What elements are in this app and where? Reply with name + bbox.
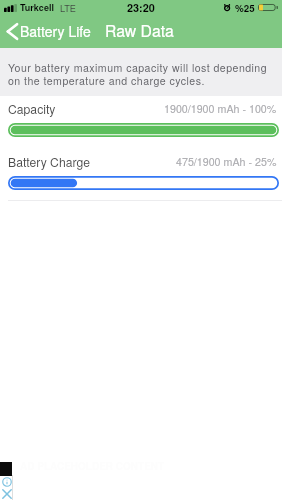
staticText: LTE [60,1,76,14]
staticText: Turkcell [20,1,54,14]
staticText: Your battery maximum capacity will lost … [8,60,268,88]
button[interactable]: Back to Battery Life [2,20,94,48]
staticText: 475/1900 mAh - 25% [176,154,277,169]
button[interactable]: Close ad [2,489,12,499]
staticText: %25 [235,1,255,15]
button[interactable]: Ad information [2,477,12,487]
staticText: 1900/1900 mAh - 100% [164,101,277,116]
staticText: 23:20 [127,0,155,16]
staticText: Raw Data [105,19,174,42]
staticText: Battery Charge [8,153,91,170]
staticText: Capacity [8,100,56,117]
staticText: Battery Life [20,21,91,41]
